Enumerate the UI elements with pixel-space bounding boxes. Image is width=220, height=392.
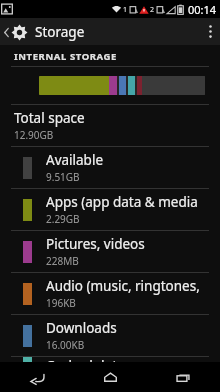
staticText: INTERNAL STORAGE bbox=[14, 50, 117, 63]
staticText: 00:14 bbox=[188, 2, 217, 17]
button[interactable]: Audio (music, ringtones, podc.. bbox=[0, 273, 220, 314]
button[interactable]: Navigate up bbox=[0, 23, 91, 41]
staticText: Cached data bbox=[46, 357, 125, 362]
staticText: 9.51GB bbox=[46, 170, 80, 184]
button[interactable]: Cached data bbox=[0, 357, 220, 362]
staticText: Audio (music, ringtones, podc.. bbox=[46, 277, 214, 295]
staticText: 16.00KB bbox=[46, 338, 85, 352]
button[interactable]: More options bbox=[201, 20, 220, 43]
staticText: Downloads bbox=[46, 319, 117, 337]
button[interactable]: Back bbox=[0, 362, 74, 392]
staticText: Storage bbox=[35, 23, 85, 41]
staticText: Available bbox=[46, 151, 103, 169]
staticText: 12.90GB bbox=[14, 128, 54, 142]
button[interactable]: Recent apps bbox=[147, 362, 220, 392]
staticText: 196KB bbox=[46, 296, 76, 310]
staticText: 2.29GB bbox=[46, 212, 80, 226]
staticText: Total space bbox=[14, 109, 85, 127]
staticText: Pictures, videos bbox=[46, 235, 145, 253]
button[interactable]: Downloads bbox=[0, 315, 220, 356]
button[interactable]: Apps (app data & media cont.. bbox=[0, 189, 220, 230]
button[interactable]: Total space bbox=[0, 105, 220, 146]
button[interactable]: Pictures, videos bbox=[0, 231, 220, 272]
staticText: 2 bbox=[150, 5, 155, 15]
staticText: 228MB bbox=[46, 254, 79, 268]
staticText: Apps (app data & media cont.. bbox=[46, 193, 214, 211]
staticText: 1 bbox=[123, 5, 128, 15]
button[interactable]: Available bbox=[0, 147, 220, 188]
button[interactable]: Home bbox=[74, 362, 147, 392]
